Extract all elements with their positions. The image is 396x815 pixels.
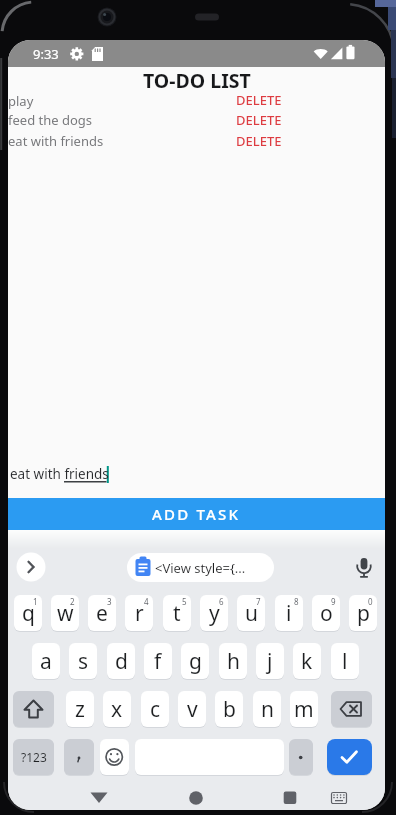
staticText: d (115, 647, 128, 676)
button[interactable]: f (144, 643, 172, 679)
staticText: g (189, 647, 202, 676)
staticText: b (223, 695, 236, 724)
staticText: k (301, 647, 313, 676)
button[interactable]: a (32, 643, 60, 679)
button[interactable] (100, 739, 129, 775)
button[interactable] (64, 739, 94, 775)
button[interactable]: DELETE (236, 111, 282, 129)
button[interactable] (352, 555, 376, 579)
staticText: feed the dogs (8, 111, 93, 129)
staticText: a (40, 647, 52, 676)
button[interactable]: p (349, 595, 377, 631)
staticText: 3 (107, 596, 112, 607)
button[interactable]: t (163, 595, 191, 631)
staticText: m (294, 695, 314, 724)
staticText: v (187, 695, 198, 724)
button[interactable] (13, 691, 54, 727)
button[interactable]: v (178, 691, 206, 727)
button[interactable]: ?123 (13, 739, 54, 775)
button[interactable]: b (215, 691, 243, 727)
staticText: DELETE (236, 91, 282, 109)
staticText: j (267, 647, 273, 676)
button[interactable]: eat with friends (8, 458, 385, 490)
button[interactable] (182, 784, 210, 810)
button[interactable]: w (51, 595, 79, 631)
button[interactable]: l (331, 643, 359, 679)
button[interactable]: r (125, 595, 153, 631)
staticText: play (8, 92, 34, 110)
staticText: z (75, 695, 85, 724)
button[interactable]: <View style={... (127, 553, 274, 582)
button[interactable]: c (141, 691, 169, 727)
staticText: u (245, 599, 258, 628)
button[interactable] (327, 739, 372, 775)
button[interactable]: m (290, 691, 318, 727)
staticText: i (286, 599, 292, 628)
staticText: 7 (256, 596, 261, 607)
button[interactable] (325, 784, 353, 810)
button[interactable]: DELETE (236, 132, 282, 150)
button[interactable]: ADD TASK (8, 498, 385, 530)
staticText: f (154, 647, 162, 676)
staticText: 9 (331, 596, 336, 607)
staticText: 4 (144, 596, 149, 607)
staticText: t (173, 599, 181, 628)
staticText: DELETE (236, 111, 282, 129)
staticText: 2 (70, 596, 75, 607)
button[interactable]: z (66, 691, 94, 727)
staticText: p (357, 599, 370, 628)
button[interactable]: g (181, 643, 209, 679)
button[interactable] (17, 553, 46, 582)
button[interactable]: DELETE (236, 91, 282, 109)
staticText: ADD TASK (152, 504, 241, 524)
staticText: 5 (182, 596, 187, 607)
button[interactable] (289, 739, 313, 775)
button[interactable]: i (275, 595, 303, 631)
staticText: <View style={... (155, 559, 246, 577)
staticText: l (342, 647, 348, 676)
staticText: y (209, 599, 220, 628)
staticText: eat with friends (10, 465, 109, 483)
staticText: o (320, 599, 333, 628)
staticText: r (135, 599, 144, 628)
staticText: eat with friends (8, 132, 104, 150)
button[interactable]: x (103, 691, 131, 727)
button[interactable] (331, 691, 372, 727)
staticText: 9:33 (33, 45, 59, 63)
button[interactable]: k (293, 643, 321, 679)
button[interactable] (276, 784, 304, 810)
staticText: 0 (368, 596, 373, 607)
staticText: e (96, 599, 108, 628)
staticText: s (78, 647, 89, 676)
staticText: h (227, 647, 240, 676)
staticText: TO-DO LIST (143, 67, 251, 94)
button[interactable]: h (219, 643, 247, 679)
staticText: DELETE (236, 132, 282, 150)
button[interactable]: n (253, 691, 281, 727)
staticText: n (261, 695, 274, 724)
button[interactable]: e (88, 595, 116, 631)
button[interactable]: s (69, 643, 97, 679)
button[interactable]: u (237, 595, 265, 631)
button[interactable] (85, 784, 113, 810)
button[interactable]: y (200, 595, 228, 631)
staticText: 8 (294, 596, 299, 607)
button[interactable]: q (14, 595, 42, 631)
button[interactable]: j (256, 643, 284, 679)
staticText: 1 (33, 596, 38, 607)
staticText: c (150, 695, 161, 724)
button[interactable]: d (107, 643, 135, 679)
staticText: x (111, 695, 123, 724)
staticText: w (57, 599, 74, 628)
staticText: q (22, 599, 35, 628)
staticText: ?123 (21, 749, 47, 765)
button[interactable]: o (312, 595, 340, 631)
staticText: 6 (219, 596, 224, 607)
